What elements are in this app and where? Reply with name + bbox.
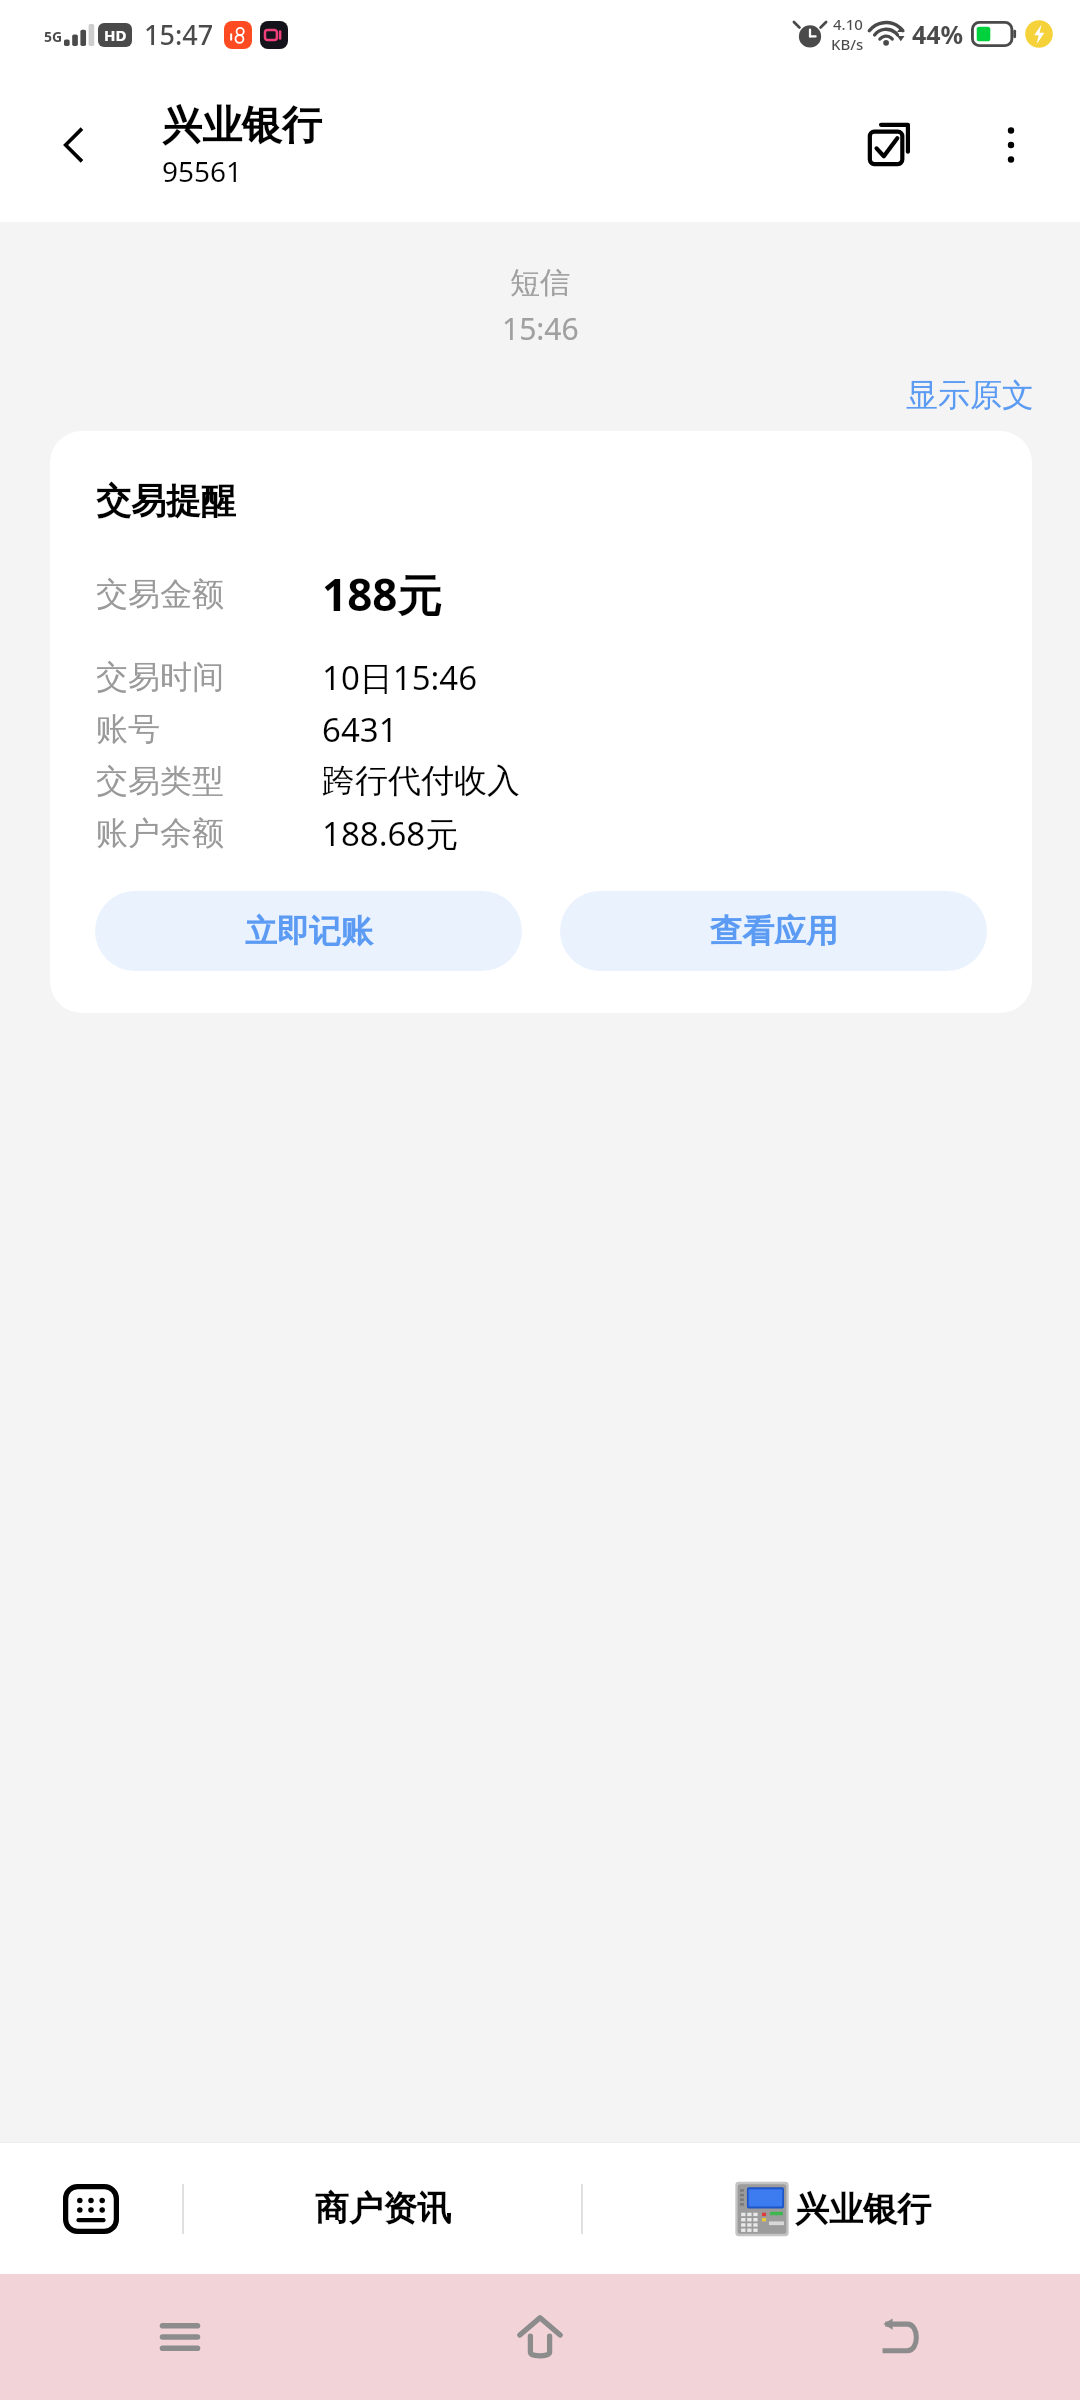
staticText: 账户余额 [96,813,224,853]
button[interactable]: Back [720,2274,1080,2400]
staticText: 兴业银行 [795,2188,931,2231]
button[interactable]: Back [46,117,102,173]
button[interactable]: Recents [0,2274,360,2400]
staticText: KB/s [831,34,864,54]
staticText: 交易时间 [96,657,224,697]
staticText: 查看应用 [710,911,838,951]
staticText: HD [104,25,127,45]
staticText: 6431 [322,707,398,752]
button[interactable]: 查看应用 [560,891,987,971]
button[interactable]: 显示原文 [902,371,1038,419]
staticText: 10日15:46 [322,655,478,700]
staticText: 交易提醒 [96,479,236,523]
staticText: 4.10 [833,14,863,34]
button[interactable]: More options [972,106,1050,184]
staticText: 商户资讯 [315,2187,451,2230]
staticText: 5G [44,27,63,46]
staticText: 188元 [322,564,442,624]
button[interactable]: 商户资讯 [184,2143,581,2274]
staticText: 44% [912,17,964,51]
button[interactable]: Select messages [848,103,932,187]
button[interactable]: 立即记账 [95,891,522,971]
staticText: 15:46 [502,308,579,349]
staticText: 显示原文 [906,375,1034,415]
button[interactable]: 交易提醒 [50,431,1032,1013]
staticText: 账号 [96,709,160,749]
button[interactable]: 兴业银行 [162,100,322,190]
staticText: 跨行代付收入 [322,760,520,802]
staticText: 188.68元 [322,811,459,856]
staticText: 立即记账 [245,911,373,951]
staticText: 交易类型 [96,761,224,801]
staticText: 交易金额 [96,574,224,614]
staticText: 15:47 [144,16,214,53]
button[interactable]: 兴业银行 [583,2143,1080,2274]
staticText: 95561 [162,152,243,190]
button[interactable]: Home [360,2274,720,2400]
staticText: 兴业银行 [162,100,322,150]
button[interactable]: Keyboard [0,2143,182,2274]
staticText: 短信 [510,264,570,302]
